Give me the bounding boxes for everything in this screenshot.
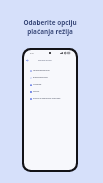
- button[interactable]: Vodovod: [24, 81, 76, 88]
- staticText: Odaberite opciju: [23, 18, 77, 27]
- staticText: Plaćanje računa: [38, 59, 52, 61]
- staticText: plaćanja režija: [27, 27, 73, 36]
- button[interactable]: Back: [26, 59, 29, 62]
- staticText: Porezi & zajedničke naknade: [33, 97, 61, 100]
- staticText: Ostalo: [33, 90, 40, 93]
- staticText: Elektroprivreda: [33, 76, 48, 79]
- staticText: Telekomunikacije: [33, 69, 50, 72]
- button[interactable]: Elektroprivreda: [24, 74, 76, 81]
- button[interactable]: Telekomunikacije: [24, 67, 76, 74]
- staticText: Vodovod: [33, 83, 42, 86]
- button[interactable]: Porezi & zajedničke naknade: [24, 95, 76, 102]
- staticText: 9:41: [30, 52, 35, 55]
- button[interactable]: Ostalo: [24, 88, 76, 95]
